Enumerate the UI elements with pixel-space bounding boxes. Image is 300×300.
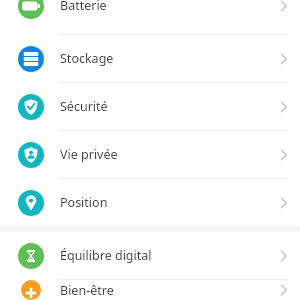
button[interactable]: Stockage (0, 35, 300, 82)
button[interactable]: Batterie (0, 0, 300, 35)
button[interactable]: Bien-être (0, 280, 300, 300)
staticText: Bien-être (60, 282, 280, 299)
button[interactable]: Sécurité (0, 83, 300, 130)
button[interactable]: Équilibre digital (0, 232, 300, 279)
button[interactable]: Vie privée (0, 131, 300, 178)
staticText: Vie privée (60, 146, 280, 163)
button[interactable]: Position (0, 179, 300, 226)
staticText: Batterie (60, 0, 280, 14)
staticText: Sécurité (60, 98, 280, 115)
staticText: Position (60, 194, 280, 211)
staticText: Équilibre digital (60, 247, 280, 264)
staticText: Stockage (60, 50, 280, 67)
